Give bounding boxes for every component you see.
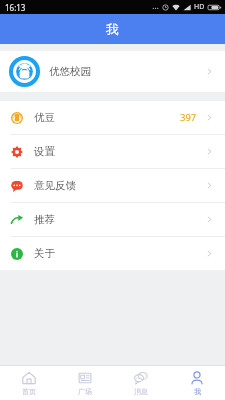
staticText: 意见反馈: [34, 179, 76, 192]
staticText: 设置: [34, 145, 55, 158]
staticText: 首页: [22, 387, 36, 396]
button[interactable]: 我: [169, 366, 225, 400]
staticText: 我: [106, 21, 119, 37]
button[interactable]: 意见反馈: [0, 169, 225, 202]
button[interactable]: 首页: [0, 366, 57, 400]
button[interactable]: 广场: [57, 366, 113, 400]
button[interactable]: 优豆: [0, 101, 225, 134]
button[interactable]: 设置: [0, 135, 225, 168]
staticText: 优豆: [34, 111, 55, 124]
staticText: 消息: [134, 387, 148, 396]
button[interactable]: 优悠校园: [0, 51, 225, 92]
button[interactable]: 推荐: [0, 203, 225, 236]
button[interactable]: 关于: [0, 237, 225, 270]
staticText: 广场: [78, 387, 92, 396]
staticText: 我: [194, 387, 201, 396]
staticText: 优悠校园: [49, 65, 91, 78]
staticText: 推荐: [34, 213, 55, 226]
staticText: 关于: [34, 247, 55, 260]
staticText: 16:13: [5, 2, 26, 13]
staticText: 397: [180, 111, 197, 124]
staticText: HD: [194, 2, 205, 12]
button[interactable]: 消息: [113, 366, 169, 400]
